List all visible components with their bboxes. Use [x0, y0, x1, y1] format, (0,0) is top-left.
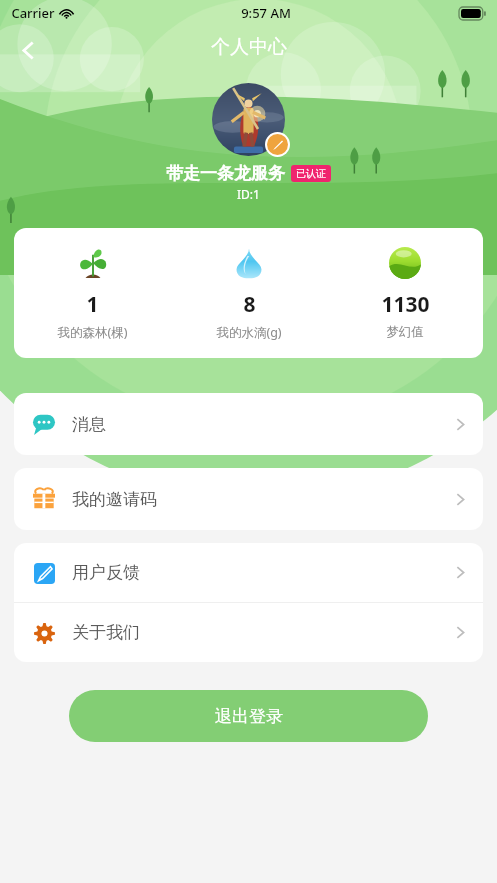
staticText: 已认证 — [296, 167, 326, 180]
staticText: ID:1 — [237, 186, 260, 202]
staticText: 9:57 AM — [241, 4, 291, 22]
button[interactable]: Avatar — [212, 83, 285, 156]
button[interactable]: 1 — [14, 243, 171, 341]
button[interactable]: 用户反馈 — [14, 543, 483, 602]
staticText: 消息 — [72, 414, 106, 435]
button[interactable]: 8 — [171, 243, 327, 341]
staticText: Carrier — [11, 4, 55, 22]
staticText: 我的邀请码 — [72, 489, 157, 510]
staticText: 梦幻值 — [386, 324, 424, 340]
staticText: 1130 — [381, 290, 430, 319]
button[interactable]: Edit avatar — [267, 134, 288, 155]
staticText: 用户反馈 — [72, 562, 140, 583]
staticText: 退出登录 — [215, 706, 283, 727]
staticText: 我的水滴(g) — [216, 324, 282, 341]
staticText: 关于我们 — [72, 622, 140, 643]
staticText: 我的森林(棵) — [57, 324, 128, 341]
button[interactable]: Back — [6, 28, 50, 72]
staticText: 带走一条龙服务 — [166, 163, 285, 184]
staticText: 8 — [243, 290, 256, 319]
staticText: 1 — [86, 290, 99, 319]
button[interactable]: 1130 — [327, 243, 483, 340]
button[interactable]: 关于我们 — [14, 603, 483, 662]
button[interactable]: 退出登录 — [69, 690, 428, 742]
button[interactable]: 消息 — [14, 393, 483, 455]
button[interactable]: 我的邀请码 — [14, 468, 483, 530]
staticText: 个人中心 — [211, 35, 287, 59]
